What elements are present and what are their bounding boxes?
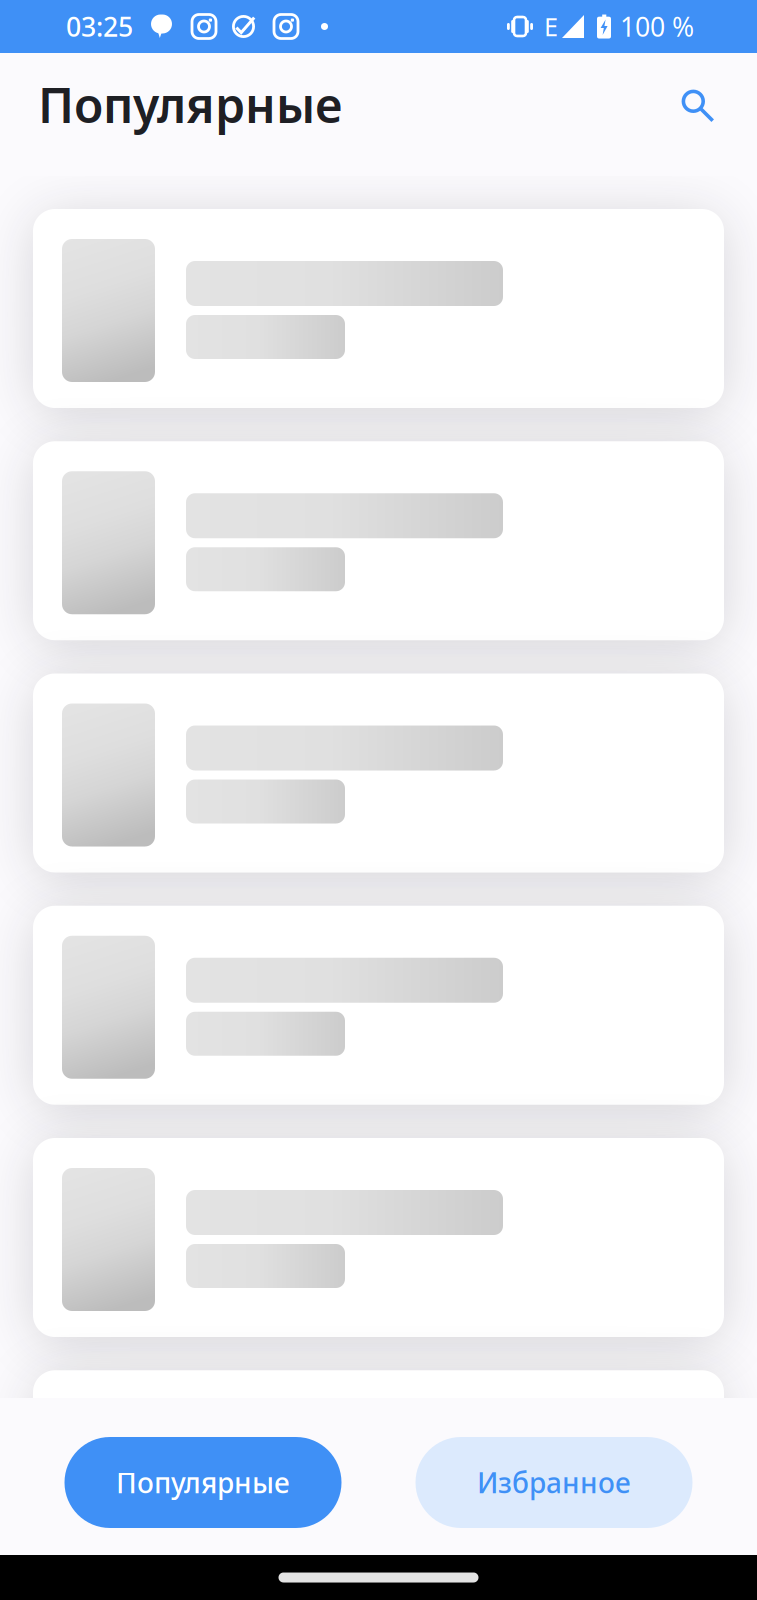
staticText: 100 % [620, 9, 694, 44]
button[interactable]: Search [667, 73, 729, 135]
staticText: Популярные [116, 1464, 290, 1501]
staticText: Популярные [38, 73, 342, 136]
staticText: 03:25 [66, 9, 133, 44]
staticText: E [544, 10, 558, 43]
staticText: Избранное [477, 1464, 631, 1501]
button[interactable]: Избранное [415, 1437, 692, 1528]
button[interactable]: Популярные [64, 1437, 341, 1528]
